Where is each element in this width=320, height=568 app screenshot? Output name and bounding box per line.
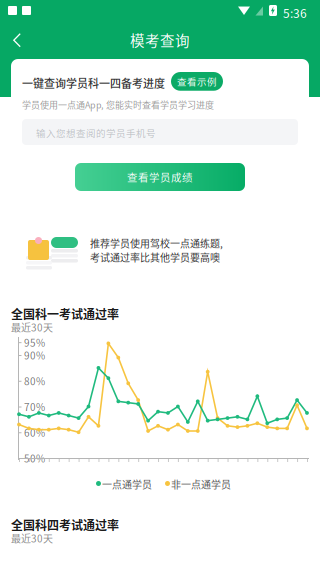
staticText: 查看学员成绩 bbox=[127, 169, 193, 185]
staticText: 60% bbox=[24, 425, 45, 440]
staticText: 模考查询 bbox=[130, 29, 190, 50]
staticText: 考试通过率比其他学员要高噢 bbox=[90, 250, 220, 264]
staticText: 5:36 bbox=[283, 4, 307, 21]
button[interactable]: 输入您想查阅的学员手机号 bbox=[22, 119, 298, 145]
staticText: 非一点通学员 bbox=[171, 477, 231, 491]
staticText: 全国科一考试通过率 bbox=[11, 305, 119, 322]
staticText: 80% bbox=[24, 374, 45, 388]
staticText: 推荐学员使用驾校一点通练题, bbox=[90, 236, 223, 250]
staticText: 95% bbox=[24, 335, 45, 350]
button[interactable]: 查看学员成绩 bbox=[75, 163, 245, 191]
staticText: 一点通学员 bbox=[102, 477, 152, 491]
button[interactable]: 查看示例 bbox=[171, 72, 223, 91]
button[interactable]: 返回 bbox=[0, 22, 34, 58]
staticText: 输入您想查阅的学员手机号 bbox=[36, 126, 156, 140]
staticText: 一键查询学员科一四备考进度 bbox=[22, 75, 165, 91]
staticText: 最近30天 bbox=[11, 320, 53, 334]
staticText: 最近30天 bbox=[11, 531, 53, 545]
staticText: 70% bbox=[24, 399, 45, 414]
staticText: 学员使用一点通App, 您能实时查看学员学习进度 bbox=[22, 98, 214, 111]
staticText: 全国科四考试通过率 bbox=[11, 516, 119, 533]
staticText: 50% bbox=[24, 451, 45, 465]
staticText: 90% bbox=[24, 348, 45, 362]
staticText: 查看示例 bbox=[177, 74, 217, 88]
